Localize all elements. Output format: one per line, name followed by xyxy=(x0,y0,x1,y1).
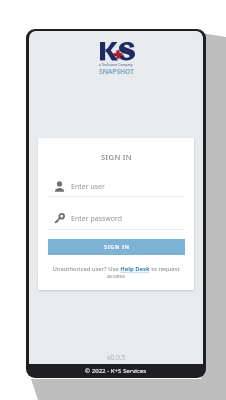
staticText: SNAPSHOT xyxy=(99,67,134,76)
staticText: Enter password xyxy=(71,214,123,224)
button[interactable]: Unauthorized user? Use Help Desk to requ… xyxy=(50,265,182,280)
staticText: SIGN IN xyxy=(101,152,132,162)
staticText: SIGN IN xyxy=(104,243,130,251)
staticText: a TenSource Company xyxy=(99,63,133,67)
staticText: Enter user xyxy=(71,182,105,192)
staticText: © 2022 - K+S Services xyxy=(85,366,147,374)
staticText: v0.0.5 xyxy=(107,353,126,362)
button[interactable]: SIGN IN xyxy=(48,239,185,255)
